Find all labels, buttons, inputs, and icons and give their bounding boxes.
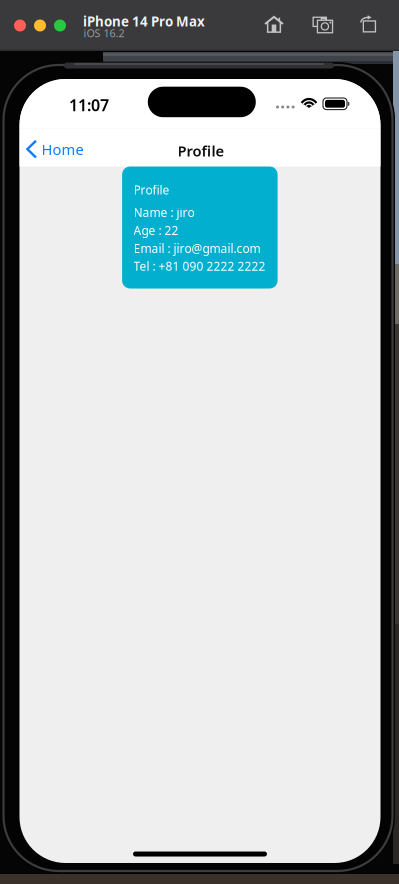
staticText: Profile [134, 182, 170, 198]
staticText: iPhone 14 Pro Max [83, 12, 205, 30]
staticText: Email : jiro@gmail.com [134, 240, 261, 256]
staticText: Home [41, 139, 83, 159]
staticText: Tel : +81 090 2222 2222 [134, 258, 266, 274]
staticText: Profile [177, 141, 224, 160]
staticText: Name : jiro [134, 204, 195, 220]
staticText: iOS 16.2 [83, 26, 124, 40]
button[interactable]: Home [258, 9, 290, 40]
staticText: 11:07 [69, 94, 109, 116]
button[interactable]: Home [20, 130, 88, 168]
button[interactable]: Rotate device [353, 9, 382, 39]
staticText: Age : 22 [134, 222, 179, 238]
button[interactable]: Screenshot [306, 10, 339, 40]
